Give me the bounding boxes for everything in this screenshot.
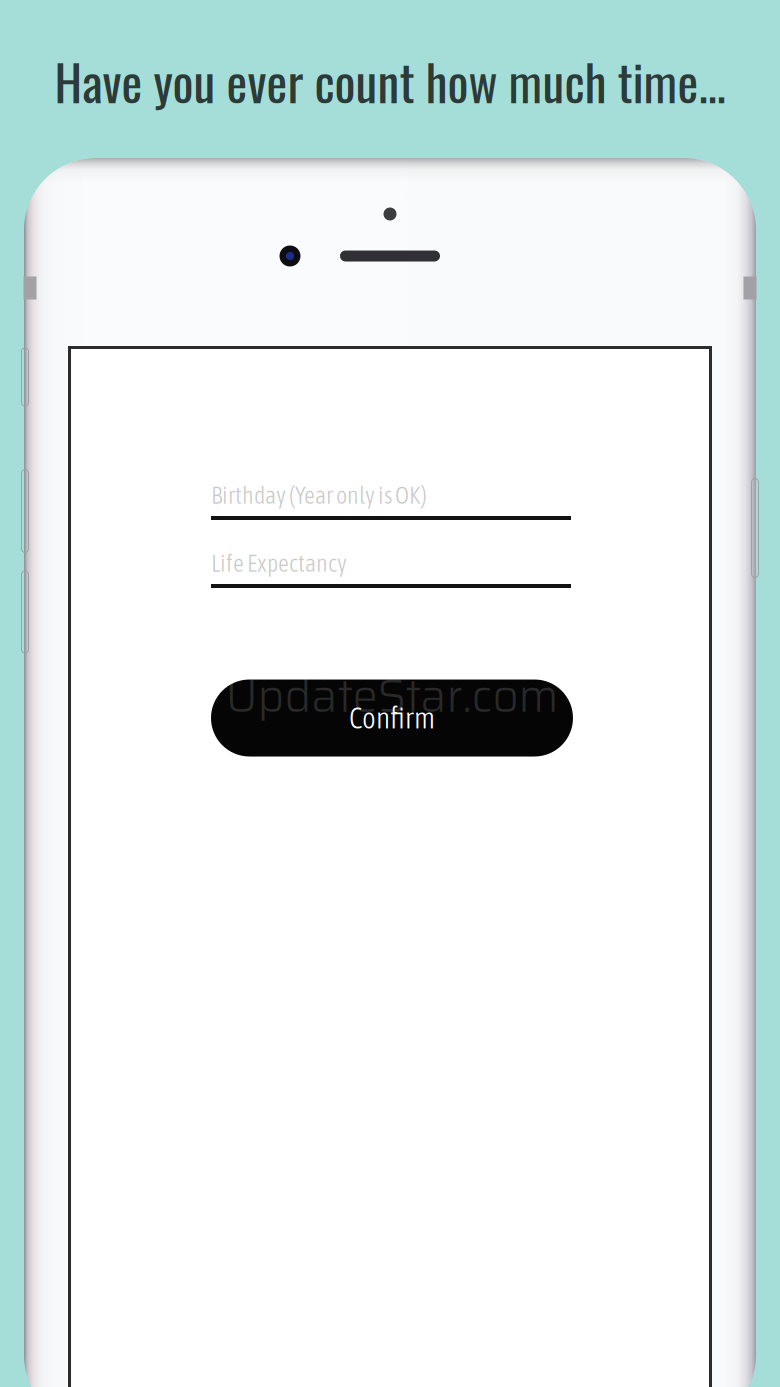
staticText: Birthday (Year only is OK) [211, 481, 427, 509]
staticText: Have you ever count how much time... [54, 44, 725, 117]
staticText: Confirm [349, 701, 435, 735]
button[interactable]: Birthday (Year only is OK) [211, 477, 571, 533]
staticText: Life Expectancy [211, 549, 347, 577]
staticText: UpdateStar.com [225, 660, 558, 732]
button[interactable]: Life Expectancy [211, 545, 571, 601]
button[interactable]: Confirm [211, 679, 573, 756]
